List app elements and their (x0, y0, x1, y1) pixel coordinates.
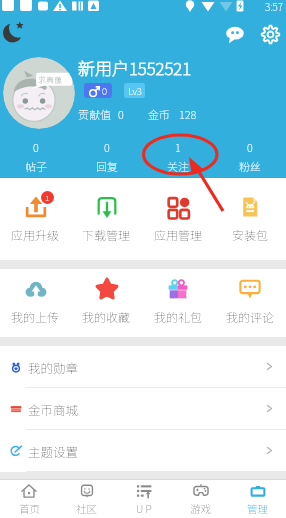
staticText: 新用户1552521 (78, 55, 191, 80)
button[interactable]: 游戏 (172, 480, 229, 518)
staticText: 粉丝 (239, 158, 261, 174)
button[interactable]: 0 (214, 139, 286, 174)
button[interactable]: 安装包 (214, 194, 286, 243)
button[interactable]: Avatar (3, 57, 75, 129)
button[interactable]: 主题设置 (0, 430, 286, 471)
staticText: 我的收藏 (82, 308, 131, 325)
staticText: 安装包 (232, 226, 269, 243)
staticText: 我的上传 (11, 308, 60, 325)
staticText: 1 (175, 139, 181, 155)
staticText: 0 (104, 139, 110, 155)
staticText: Lv3 (128, 84, 142, 98)
staticText: 主题设置 (28, 442, 79, 460)
staticText: 0 (247, 139, 253, 155)
staticText: 回复 (96, 158, 118, 174)
staticText: 金币商城 (28, 400, 79, 418)
staticText: 0 (102, 84, 107, 98)
staticText: 帖子 (25, 158, 47, 174)
staticText: 求真像 (38, 74, 62, 86)
button[interactable]: 我的勋章 (0, 346, 286, 387)
button[interactable]: 社区 (58, 480, 115, 518)
staticText: 关注 (167, 158, 189, 174)
staticText: 3:57 (265, 0, 283, 12)
button[interactable]: 我的评论 (214, 276, 286, 325)
staticText: 贡献值 (78, 106, 111, 122)
button[interactable]: 0 (0, 139, 71, 174)
staticText: 应用升级 (11, 226, 60, 243)
button[interactable]: Settings (261, 25, 280, 44)
button[interactable]: 金币商城 (0, 388, 286, 429)
button[interactable]: 1 (0, 194, 71, 243)
button[interactable]: 我的上传 (0, 276, 71, 325)
staticText: 0 (33, 139, 39, 155)
staticText: 社区 (76, 501, 97, 516)
button[interactable]: 我的收藏 (71, 276, 142, 325)
staticText: 管理 (247, 501, 268, 516)
button[interactable]: 1 (142, 139, 214, 174)
staticText: 下载管理 (82, 226, 131, 243)
button[interactable]: 首页 (0, 480, 58, 518)
staticText: 金币 (148, 106, 170, 122)
staticText: 1 (45, 192, 50, 204)
staticText: 我的礼包 (154, 308, 203, 325)
staticText: 我的评论 (226, 308, 275, 325)
staticText: 游戏 (190, 501, 211, 516)
button[interactable]: 0 (71, 139, 142, 174)
button[interactable]: U P (115, 480, 172, 518)
staticText: 128 (179, 106, 197, 122)
button[interactable]: 我的礼包 (142, 276, 214, 325)
button[interactable]: 应用管理 (142, 194, 214, 243)
button[interactable]: 管理 (229, 480, 286, 518)
staticText: 应用管理 (154, 226, 203, 243)
button[interactable]: 下载管理 (71, 194, 142, 243)
staticText: 首页 (19, 501, 40, 516)
staticText: 我的勋章 (28, 358, 79, 376)
staticText: 0 (118, 106, 124, 122)
staticText: U P (136, 501, 152, 516)
button[interactable]: Messages (225, 24, 245, 44)
